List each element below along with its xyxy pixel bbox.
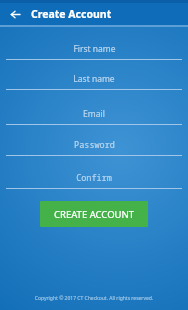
button[interactable]: First name (0, 43, 188, 60)
button[interactable]: Last name (0, 73, 188, 90)
staticText: CREATE ACCOUNT (54, 208, 135, 221)
button[interactable]: CREATE ACCOUNT (40, 201, 148, 227)
staticText: Copyright © 2017 CT Checkout. All rights… (0, 295, 188, 302)
staticText: Create Account (31, 7, 112, 21)
staticText: Email (83, 108, 105, 120)
staticText: Confirm (76, 172, 112, 184)
button[interactable]: Back (6, 5, 24, 23)
staticText: Last name (73, 73, 115, 85)
button[interactable]: Email (0, 108, 188, 125)
button[interactable]: Confirm (0, 172, 188, 189)
staticText: Password (74, 139, 115, 151)
staticText: First name (73, 43, 116, 55)
button[interactable]: Password (0, 139, 188, 156)
